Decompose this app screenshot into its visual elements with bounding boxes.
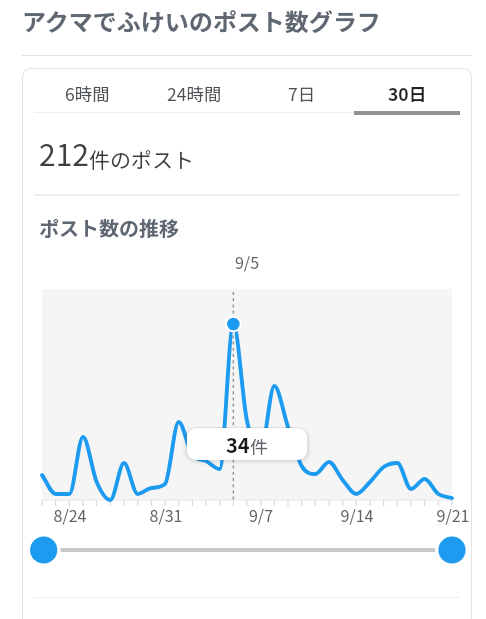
staticText: 24時間 (167, 81, 222, 106)
staticText: 9/5 (217, 250, 277, 273)
staticText: 8/24 (35, 503, 105, 526)
staticText: 9/7 (226, 503, 296, 526)
button[interactable]: Range start (30, 536, 58, 564)
staticText: 9/21 (418, 503, 486, 526)
staticText: 34 (226, 430, 250, 459)
staticText: 9/14 (322, 503, 392, 526)
staticText: 8/31 (131, 503, 201, 526)
staticText: 7日 (288, 81, 316, 106)
button[interactable]: 6時間 (34, 68, 141, 118)
button[interactable]: 7日 (248, 68, 355, 118)
staticText: 30日 (388, 81, 427, 106)
staticText: 6時間 (65, 81, 110, 106)
button[interactable]: 24時間 (141, 68, 248, 118)
staticText: 件 (250, 433, 268, 459)
staticText: アクマでふけいのポスト数グラフ (22, 3, 381, 38)
staticText: 件のポスト (89, 144, 194, 174)
staticText: 212 (39, 131, 89, 174)
button[interactable]: Range end (438, 536, 466, 564)
staticText: ポスト数の推移 (39, 213, 179, 242)
button[interactable]: 30日 (355, 68, 460, 118)
